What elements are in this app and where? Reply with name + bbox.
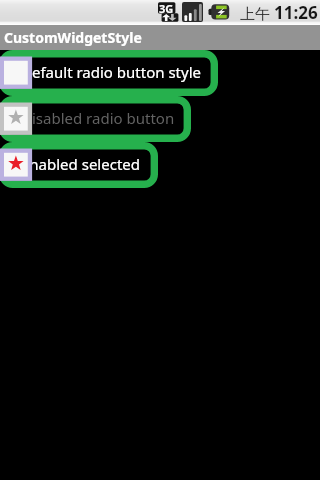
staticText: 上午 bbox=[240, 3, 274, 23]
staticText: 11:26 bbox=[274, 1, 318, 24]
staticText: Enabled selected bbox=[21, 154, 140, 174]
other: 3G network, signal strength, battery cha… bbox=[0, 0, 320, 25]
staticText: Default radio button style bbox=[21, 62, 201, 82]
staticText: Disabled radio button bbox=[21, 108, 175, 128]
staticText: CustomWidgetStyle bbox=[4, 28, 142, 47]
button[interactable]: Disabled radio button bbox=[0, 96, 191, 142]
staticText: 3G bbox=[159, 1, 174, 16]
button[interactable]: Default radio button style bbox=[0, 50, 218, 96]
button[interactable]: Enabled selected bbox=[0, 142, 158, 188]
